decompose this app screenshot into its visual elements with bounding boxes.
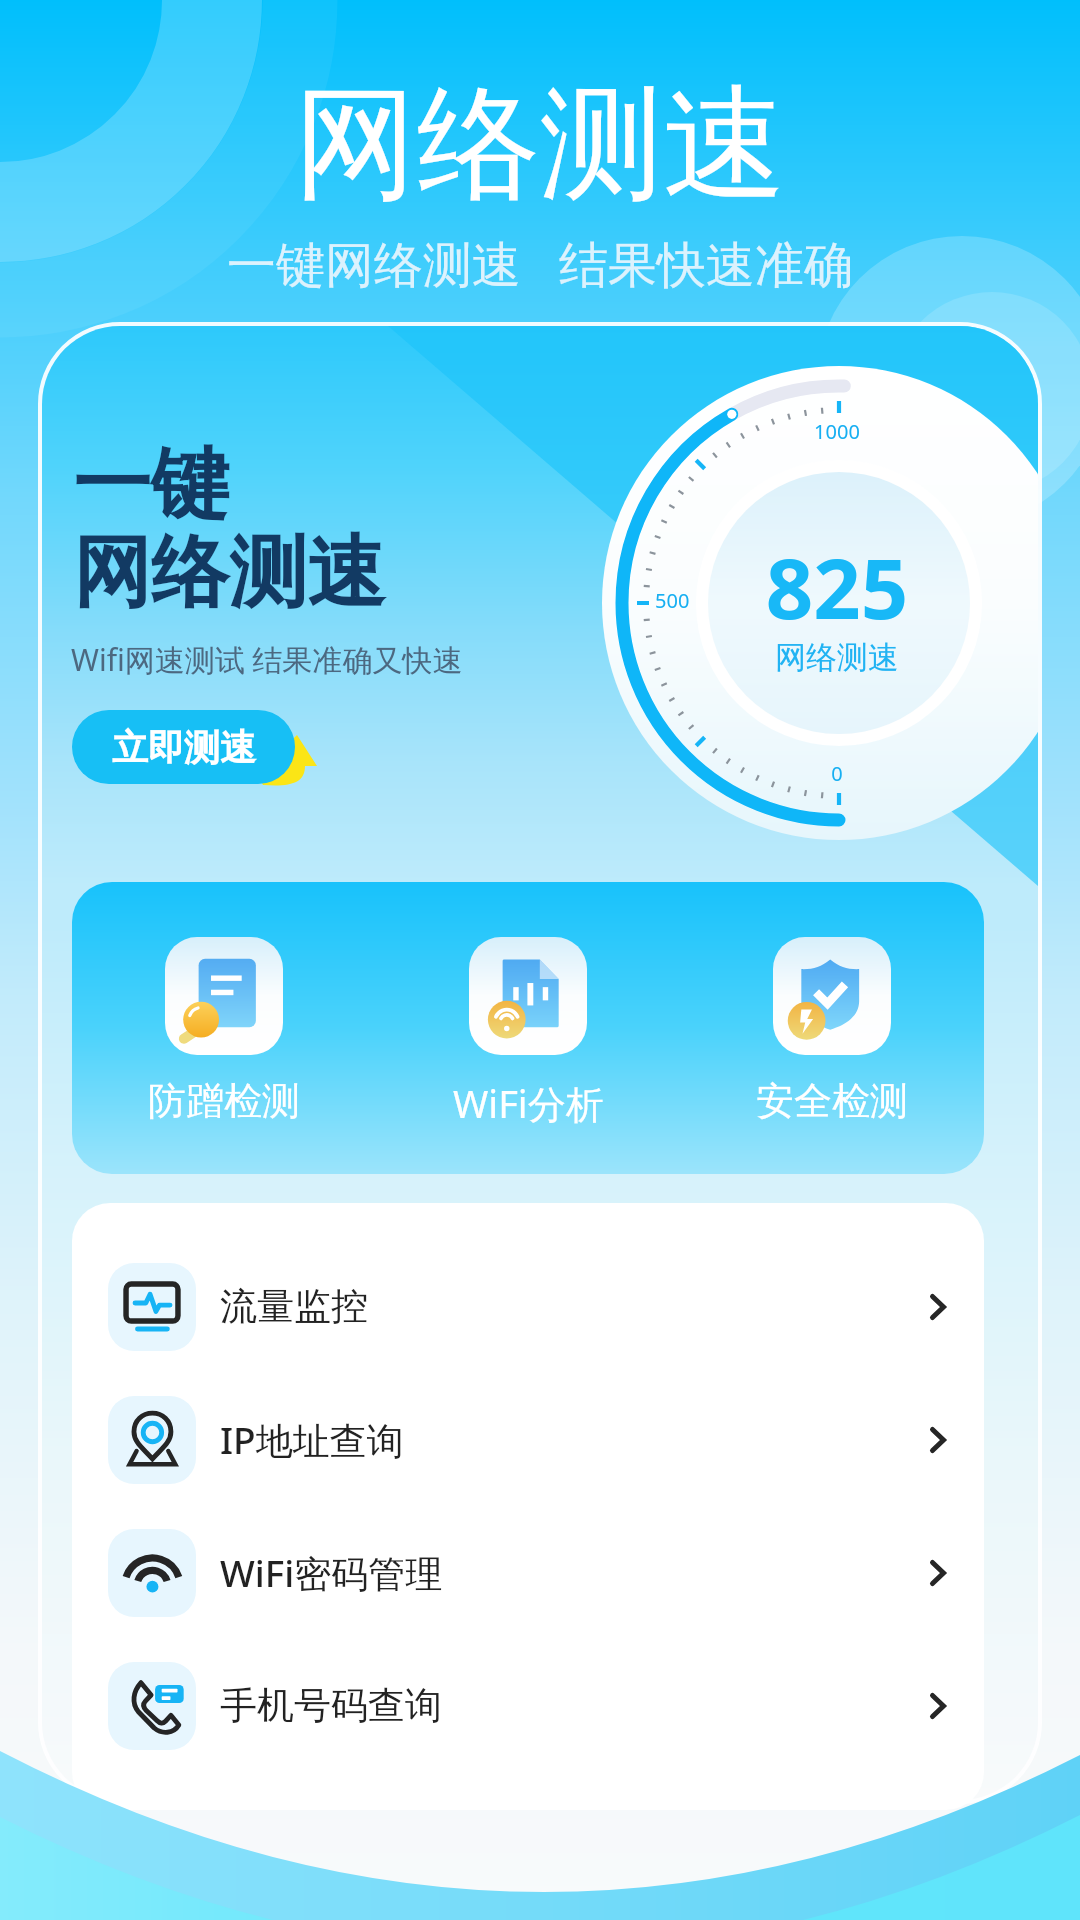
button[interactable]: 手机号码查询 bbox=[72, 1639, 984, 1772]
staticText: 立即测速 bbox=[112, 725, 256, 770]
button[interactable]: 立即测速 bbox=[72, 710, 295, 784]
staticText: 流量监控 bbox=[220, 1283, 368, 1330]
staticText: WiFi密码管理 bbox=[220, 1547, 443, 1598]
button[interactable]: 流量监控 bbox=[72, 1240, 984, 1373]
button[interactable]: IP地址查询 bbox=[72, 1373, 984, 1506]
staticText: 安全检测 bbox=[756, 1077, 908, 1125]
staticText: 一键网络测速 结果快速准确 bbox=[0, 230, 1080, 297]
staticText: IP地址查询 bbox=[220, 1414, 404, 1465]
button[interactable]: WiFi分析 bbox=[376, 937, 680, 1129]
staticText: 网络测速 bbox=[73, 524, 385, 622]
staticText: 0 bbox=[757, 760, 917, 787]
staticText: 防蹭检测 bbox=[148, 1077, 300, 1125]
staticText: 一键 bbox=[73, 436, 229, 534]
button[interactable]: WiFi密码管理 bbox=[72, 1506, 984, 1639]
button[interactable]: 防蹭检测 bbox=[72, 937, 376, 1125]
staticText: WiFi分析 bbox=[453, 1077, 604, 1129]
staticText: 网络测速 bbox=[0, 68, 1080, 223]
button[interactable]: 安全检测 bbox=[680, 937, 984, 1125]
staticText: 1000 bbox=[757, 418, 917, 445]
staticText: 手机号码查询 bbox=[220, 1682, 442, 1729]
staticText: Wifi网速测试 结果准确又快速 bbox=[71, 639, 463, 680]
staticText: 500 bbox=[655, 587, 690, 614]
staticText: 网络测速 bbox=[687, 638, 987, 677]
staticText: 825 bbox=[687, 530, 987, 643]
